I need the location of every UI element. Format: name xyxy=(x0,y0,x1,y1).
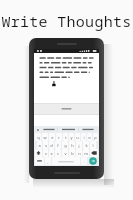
button[interactable]: z xyxy=(43,149,48,157)
button[interactable]: p xyxy=(93,133,98,141)
staticText: n xyxy=(78,151,81,156)
staticText: . xyxy=(83,159,85,164)
button[interactable]: k xyxy=(83,141,89,149)
staticText: e xyxy=(51,135,54,140)
button[interactable]: u xyxy=(75,133,80,141)
button[interactable]: t xyxy=(63,133,68,141)
staticText: l xyxy=(92,143,94,148)
staticText: , xyxy=(47,159,49,164)
button[interactable]: m xyxy=(83,149,89,157)
button[interactable]: c xyxy=(55,149,61,157)
staticText: i xyxy=(83,135,85,140)
staticText: u xyxy=(76,135,79,140)
staticText: q xyxy=(37,135,40,140)
staticText: j xyxy=(78,143,80,148)
button[interactable]: Shift xyxy=(35,149,42,157)
button[interactable]: i xyxy=(81,133,86,141)
button[interactable]: r xyxy=(56,133,62,141)
button[interactable]: v xyxy=(62,149,68,157)
staticText: t xyxy=(65,135,67,140)
staticText: f xyxy=(57,143,59,148)
button[interactable]: y xyxy=(69,133,74,141)
button[interactable]: Suggestion 3 xyxy=(79,126,97,133)
button[interactable]: Suggestion 2 xyxy=(58,126,79,133)
button[interactable]: q xyxy=(35,133,41,141)
button[interactable]: o xyxy=(87,133,92,141)
staticText: k xyxy=(85,143,88,148)
staticText: b xyxy=(71,151,74,156)
button[interactable]: a xyxy=(37,141,42,149)
button[interactable]: x xyxy=(49,149,54,157)
button[interactable]: b xyxy=(69,149,75,157)
button[interactable]: w xyxy=(42,133,48,141)
staticText: c xyxy=(57,151,59,156)
button[interactable]: l xyxy=(90,141,96,149)
button[interactable]: Suggestion 1 xyxy=(40,126,58,133)
staticText: v xyxy=(64,151,67,156)
button[interactable]: Symbols xyxy=(35,157,44,165)
staticText: h xyxy=(71,143,74,148)
button[interactable]: Send xyxy=(88,157,98,165)
staticText: r xyxy=(58,135,60,140)
button[interactable]: d xyxy=(49,141,54,149)
button[interactable]: Space xyxy=(52,157,80,165)
button[interactable]: , xyxy=(45,157,51,165)
staticText: y xyxy=(70,135,73,140)
staticText: w xyxy=(43,135,47,140)
staticText: a xyxy=(38,143,41,148)
button[interactable]: n xyxy=(76,149,82,157)
staticText: o xyxy=(88,135,91,140)
button[interactable]: e xyxy=(49,133,55,141)
staticText: Write Thoughts xyxy=(0,11,133,31)
button[interactable]: f xyxy=(55,141,61,149)
button[interactable]: Keyboard settings xyxy=(36,128,40,132)
button[interactable]: j xyxy=(76,141,82,149)
button[interactable]: h xyxy=(69,141,75,149)
staticText: z xyxy=(45,151,47,156)
button[interactable]: Backspace xyxy=(90,149,98,157)
button[interactable]: s xyxy=(43,141,48,149)
staticText: p xyxy=(94,135,97,140)
staticText: d xyxy=(50,143,53,148)
staticText: x xyxy=(50,151,53,156)
staticText: s xyxy=(45,143,47,148)
button[interactable] xyxy=(34,53,99,103)
staticText: g xyxy=(64,143,67,148)
button[interactable]: g xyxy=(62,141,68,149)
staticText: m xyxy=(84,151,88,156)
button[interactable]: Advertisement xyxy=(34,103,99,115)
